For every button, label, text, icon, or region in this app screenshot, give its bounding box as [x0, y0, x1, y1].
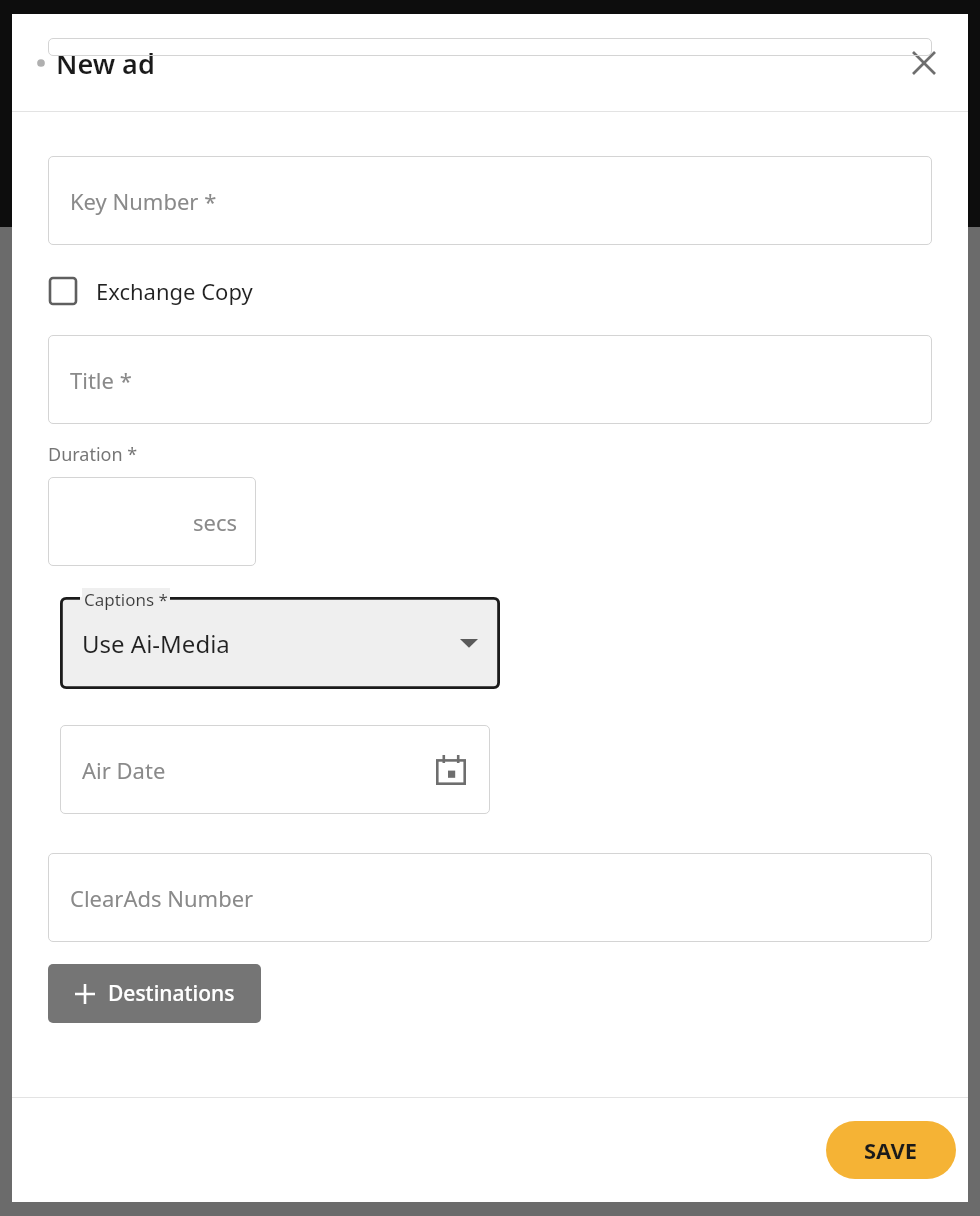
- staticText: New ad: [56, 45, 155, 82]
- staticText: Duration *: [48, 442, 138, 467]
- staticText: Destinations: [108, 979, 235, 1008]
- staticText: Key Number *: [70, 186, 217, 216]
- button[interactable]: Title *: [48, 335, 932, 424]
- button[interactable]: Exchange Copy: [48, 269, 253, 313]
- button[interactable]: Captions *: [60, 597, 500, 689]
- button[interactable]: Pick date: [434, 753, 468, 787]
- button[interactable]: ClearAds Number: [48, 853, 932, 942]
- staticText: Use Ai-Media: [82, 627, 230, 660]
- staticText: Air Date: [82, 755, 166, 785]
- staticText: Captions *: [84, 588, 168, 611]
- button[interactable]: Air Date: [60, 725, 490, 814]
- staticText: Title *: [70, 365, 132, 395]
- button[interactable]: secs: [48, 477, 256, 566]
- staticText: Exchange Copy: [96, 276, 253, 306]
- staticText: SAVE: [864, 1135, 918, 1165]
- button[interactable]: SAVE: [826, 1121, 956, 1179]
- other: Expand: [460, 634, 478, 652]
- staticText: secs: [193, 507, 238, 537]
- button[interactable]: Destinations: [48, 964, 261, 1023]
- button[interactable]: Key Number *: [48, 156, 932, 245]
- button[interactable]: Close: [898, 37, 950, 89]
- staticText: ClearAds Number: [70, 883, 254, 913]
